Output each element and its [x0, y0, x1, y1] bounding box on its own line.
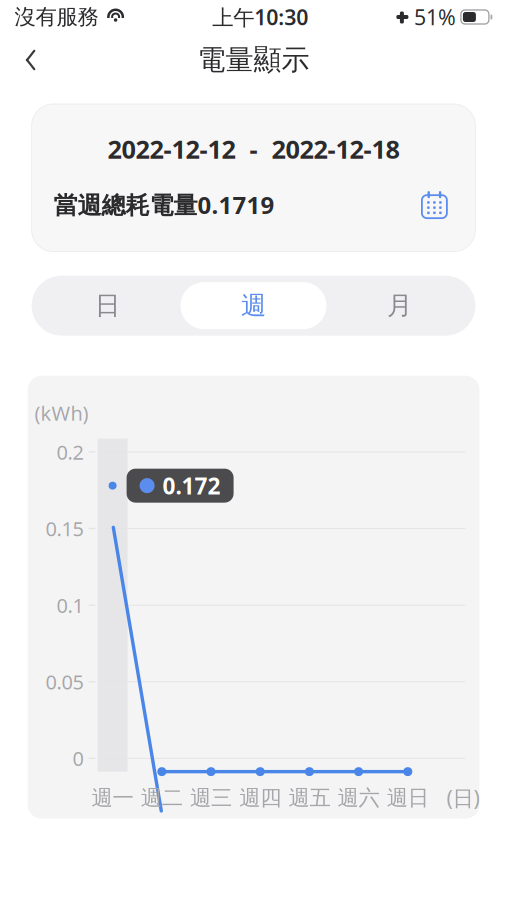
button[interactable]: 週	[180, 279, 326, 332]
staticText: 當週總耗電量0.1719	[54, 189, 275, 221]
staticText: 月	[387, 290, 412, 321]
staticText: 週二	[141, 785, 183, 811]
button[interactable]: 月	[326, 279, 472, 332]
staticText: (日)	[446, 784, 479, 812]
staticText: 上午10:30	[212, 3, 308, 31]
staticText: 週一	[92, 785, 134, 811]
staticText: 週四	[239, 785, 281, 811]
staticText: 週三	[190, 785, 232, 811]
staticText: 0.2	[57, 439, 84, 465]
button[interactable]: 選擇日期	[415, 188, 453, 222]
staticText: 週	[241, 290, 266, 321]
staticText: 2022-12-12 - 2022-12-18	[107, 132, 399, 166]
staticText: 0.172	[163, 471, 221, 501]
staticText: 週五	[288, 785, 330, 811]
staticText: 0.15	[46, 515, 84, 542]
staticText: 0.05	[46, 668, 84, 695]
staticText: (kWh)	[35, 400, 89, 426]
button[interactable]: 日	[35, 279, 180, 332]
staticText: 51%	[414, 3, 456, 31]
staticText: 電量顯示	[197, 43, 309, 77]
staticText: 0	[73, 745, 84, 772]
staticText: 週日	[387, 785, 429, 811]
staticText: 週六	[338, 785, 380, 811]
button[interactable]: 返回	[9, 38, 53, 82]
staticText: 沒有服務	[15, 4, 99, 30]
staticText: 0.1	[57, 592, 84, 618]
staticText: 日	[95, 290, 120, 321]
